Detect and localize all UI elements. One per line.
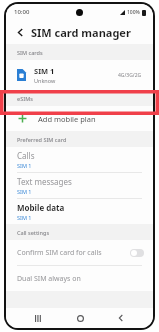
button[interactable]: Back bbox=[111, 308, 131, 328]
staticText: 4G/3G/2G bbox=[118, 72, 142, 79]
staticText: Dual SIM always on bbox=[17, 274, 144, 284]
staticText: SIM cards bbox=[17, 49, 43, 56]
staticText: Calls bbox=[17, 150, 35, 161]
button[interactable]: Add mobile plan bbox=[6, 106, 153, 131]
staticText: Text messages bbox=[17, 176, 72, 187]
staticText: Call settings bbox=[17, 229, 50, 236]
staticText: SIM 1 bbox=[17, 162, 32, 169]
button[interactable]: Home bbox=[70, 308, 90, 328]
staticText: Confirm SIM card for calls bbox=[17, 248, 130, 258]
staticText: SIM 1 bbox=[34, 66, 55, 76]
staticText: Unknow bbox=[34, 77, 56, 84]
button[interactable]: Confirm SIM card for calls bbox=[6, 240, 153, 265]
staticText: Preferred SIM card bbox=[17, 136, 67, 143]
staticText: Add mobile plan bbox=[38, 114, 96, 124]
button[interactable]: Dual SIM always on bbox=[6, 266, 153, 291]
staticText: eSIMs bbox=[17, 95, 33, 102]
button[interactable]: Mobile data bbox=[6, 199, 153, 224]
button[interactable]: SIM 1 bbox=[6, 60, 153, 90]
button[interactable]: Confirm SIM card for calls toggle bbox=[130, 249, 144, 257]
staticText: Mobile data bbox=[17, 202, 65, 213]
staticText: 10:00 bbox=[14, 8, 30, 16]
staticText: SIM card manager bbox=[31, 25, 131, 40]
staticText: SIM 1 bbox=[17, 214, 32, 221]
button[interactable]: Back bbox=[13, 25, 27, 39]
staticText: SIM 1 bbox=[17, 188, 32, 195]
button[interactable]: Calls bbox=[6, 147, 153, 172]
button[interactable]: Recents bbox=[28, 308, 48, 328]
staticText: 100% bbox=[127, 9, 140, 16]
button[interactable]: Text messages bbox=[6, 173, 153, 198]
